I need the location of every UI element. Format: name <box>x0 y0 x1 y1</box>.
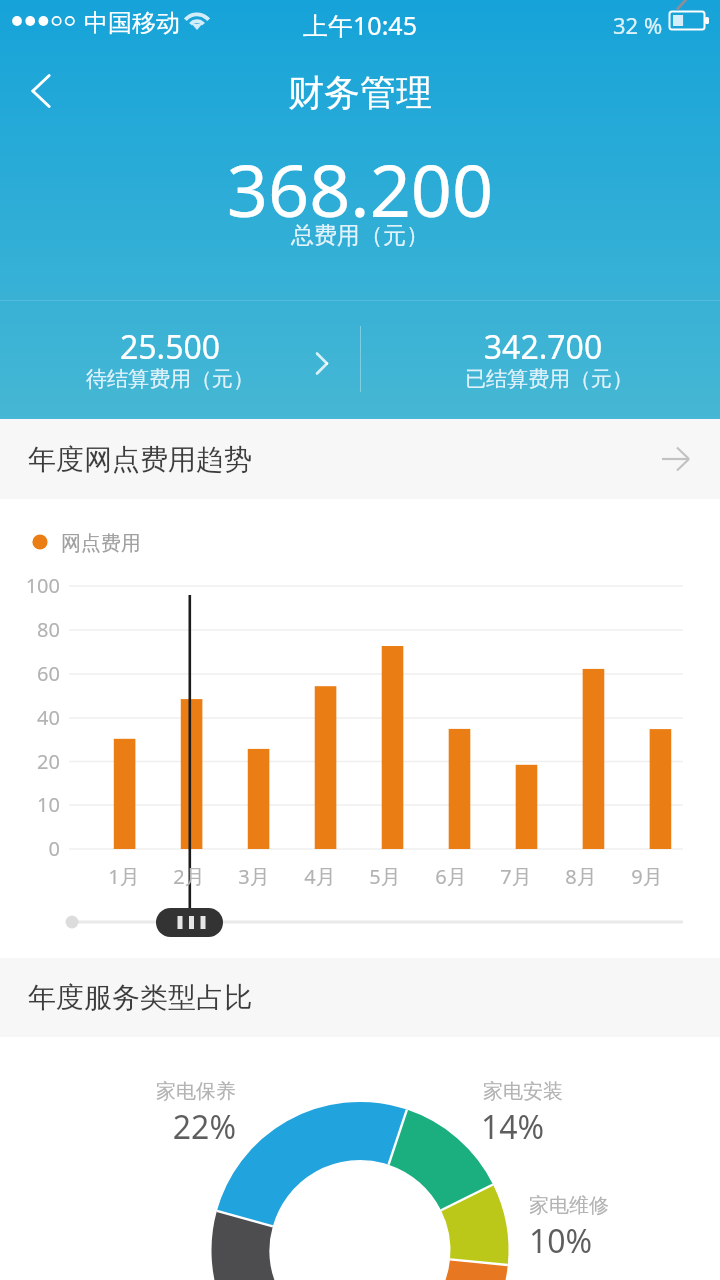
staticText: 60 <box>0 660 60 687</box>
staticText: 14% <box>481 1105 545 1149</box>
staticText: 年度网点费用趋势 <box>28 442 252 477</box>
staticText: 4月 <box>290 863 350 890</box>
button[interactable]: 年度服务类型占比 <box>0 958 720 1037</box>
staticText: 7月 <box>486 863 546 890</box>
staticText: 32 % <box>613 10 663 40</box>
staticText: 20 <box>0 748 60 775</box>
staticText: 网点费用 <box>61 531 141 556</box>
staticText: 家电维修 <box>529 1193 609 1218</box>
staticText: 2月 <box>159 863 219 890</box>
button[interactable]: 年度网点费用趋势 <box>0 419 720 499</box>
staticText: 100 <box>0 572 60 599</box>
staticText: 家电保养 <box>0 1079 236 1104</box>
staticText: 368.200 <box>0 140 720 238</box>
staticText: 1月 <box>94 863 154 890</box>
staticText: 25.500 <box>0 325 340 369</box>
staticText: 9月 <box>617 863 677 890</box>
staticText: 22% <box>0 1105 236 1149</box>
button[interactable]: Slider handle <box>156 908 223 937</box>
staticText: 10% <box>529 1219 593 1263</box>
button[interactable]: 342.700 <box>360 300 720 419</box>
button[interactable]: 25.500 <box>0 300 360 419</box>
staticText: 3月 <box>224 863 284 890</box>
staticText: 80 <box>0 616 60 643</box>
staticText: 8月 <box>551 863 611 890</box>
staticText: 40 <box>0 704 60 731</box>
staticText: 总费用（元） <box>0 221 720 250</box>
staticText: 342.700 <box>363 325 720 369</box>
staticText: 5月 <box>355 863 415 890</box>
other: More <box>660 429 720 489</box>
staticText: 财务管理 <box>0 70 720 115</box>
staticText: 年度服务类型占比 <box>28 980 252 1015</box>
staticText: 6月 <box>421 863 481 890</box>
staticText: 上午10:45 <box>0 8 720 42</box>
button[interactable]: Back <box>12 62 72 122</box>
staticText: 家电安装 <box>483 1079 563 1104</box>
staticText: 待结算费用（元） <box>0 366 340 392</box>
staticText: 中国移动 <box>84 8 180 38</box>
staticText: 已结算费用（元） <box>369 366 720 392</box>
staticText: 0 <box>0 835 60 862</box>
staticText: 10 <box>0 791 60 818</box>
